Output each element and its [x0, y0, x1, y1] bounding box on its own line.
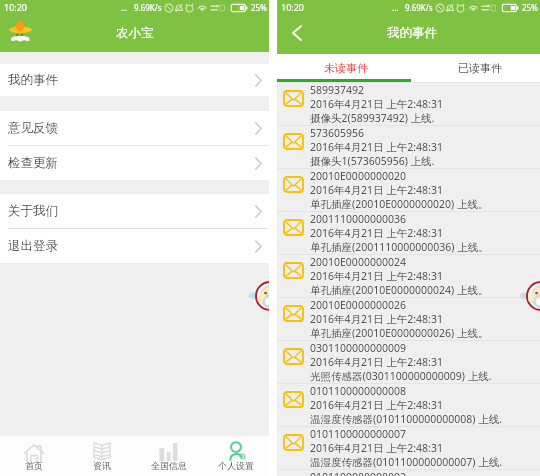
staticText: 0101100000000008 [310, 384, 407, 398]
button[interactable]: App logo [9, 21, 32, 43]
staticText: 未读事件 [324, 61, 368, 75]
staticText: ... [392, 2, 399, 13]
button[interactable]: 意见反馈 [0, 111, 269, 145]
staticText: 摄像头1(573605956) 上线. [310, 154, 435, 168]
button[interactable]: 20010E0000000024 [277, 254, 540, 297]
staticText: 温湿度传感器(0101100000000007) 上线. [310, 455, 502, 469]
button[interactable]: Assistant [239, 281, 285, 311]
staticText: 温湿度传感器(0101100000000008) 上线. [310, 412, 502, 426]
staticText: 意见反馈 [8, 120, 58, 136]
button[interactable]: 0301100000000009 [277, 340, 540, 383]
staticText: 2016年4月21日 上午2:48:31 [310, 269, 443, 283]
button[interactable]: 全国信息 [135, 436, 202, 476]
staticText: 单孔插座(20010E0000000024) 上线。 [310, 283, 489, 297]
staticText: 25% [251, 2, 267, 13]
button[interactable]: 个人设置 [202, 436, 269, 476]
staticText: 9.69K/s [405, 2, 433, 13]
staticText: 光照传感器(0301100000000009) 上线. [310, 369, 492, 383]
button[interactable]: 退出登录 [0, 229, 269, 263]
staticText: 单孔插座(20010E0000000020) 上线。 [310, 197, 489, 211]
staticText: 0101100000000002 [310, 470, 407, 476]
staticText: 2016年4月21日 上午2:48:31 [310, 97, 443, 111]
staticText: 退出登录 [8, 238, 58, 254]
staticText: 25% [522, 2, 538, 13]
button[interactable]: 未读事件 [311, 60, 381, 76]
button[interactable]: Back [292, 25, 302, 41]
staticText: 检查更新 [8, 155, 58, 171]
staticText: 2016年4月21日 上午2:48:31 [310, 355, 443, 369]
staticText: 农小宝 [116, 25, 154, 41]
button[interactable]: 已读事件 [445, 60, 515, 76]
staticText: 2016年4月21日 上午2:48:31 [310, 441, 443, 455]
staticText: 0101100000000007 [310, 427, 407, 441]
staticText: 单孔插座(20010E0000000026) 上线。 [310, 326, 489, 340]
button[interactable]: 0101100000000008 [277, 383, 540, 426]
button[interactable]: 我的事件 [0, 64, 269, 96]
button[interactable]: 首页 [0, 436, 68, 476]
staticText: 573605956 [310, 126, 365, 140]
staticText: 我的事件 [8, 72, 58, 88]
staticText: 10:20 [4, 1, 28, 13]
button[interactable]: 573605956 [277, 125, 540, 168]
button[interactable]: 20010E0000000026 [277, 297, 540, 340]
staticText: 2001110000000036 [310, 212, 407, 226]
staticText: 单孔插座(2001110000000036) 上线。 [310, 240, 489, 254]
button[interactable]: 589937492 [277, 82, 540, 125]
staticText: 2016年4月21日 上午2:48:31 [310, 312, 443, 326]
button[interactable]: 20010E0000000020 [277, 168, 540, 211]
staticText: 20010E0000000020 [310, 169, 406, 183]
button[interactable]: 0101100000000007 [277, 426, 540, 469]
staticText: ... [121, 2, 128, 13]
button[interactable]: 关于我们 [0, 194, 269, 228]
button[interactable]: 2001110000000036 [277, 211, 540, 254]
button[interactable]: 检查更新 [0, 146, 269, 180]
staticText: 2016年4月21日 上午2:48:31 [310, 140, 443, 154]
button[interactable]: 0101100000000002 [277, 469, 540, 476]
button[interactable]: 资讯 [68, 436, 135, 476]
staticText: 已读事件 [458, 61, 502, 75]
staticText: 2016年4月21日 上午2:48:31 [310, 226, 443, 240]
button[interactable]: Assistant [510, 281, 540, 311]
staticText: 2016年4月21日 上午2:48:31 [310, 398, 443, 412]
staticText: 10:20 [281, 1, 305, 13]
staticText: 全国信息 [151, 460, 187, 471]
staticText: 关于我们 [8, 203, 58, 219]
staticText: 摄像头2(589937492) 上线. [310, 111, 435, 125]
staticText: 20010E0000000026 [310, 298, 406, 312]
staticText: 20010E0000000024 [310, 255, 406, 269]
staticText: 9.69K/s [134, 2, 162, 13]
staticText: 2016年4月21日 上午2:48:31 [310, 183, 443, 197]
staticText: 589937492 [310, 83, 365, 97]
staticText: 我的事件 [387, 25, 437, 41]
staticText: 个人设置 [218, 460, 254, 471]
staticText: 首页 [25, 460, 43, 471]
staticText: 资讯 [93, 460, 111, 471]
staticText: 0301100000000009 [310, 341, 407, 355]
